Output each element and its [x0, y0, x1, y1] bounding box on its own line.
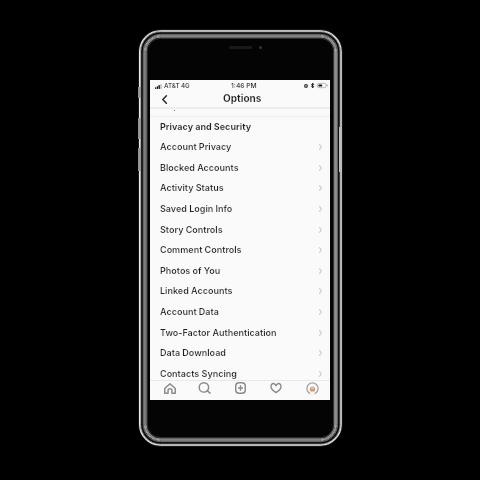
staticText: Photos of You — [160, 265, 221, 276]
staticText: 1:46 PM — [231, 82, 257, 90]
button[interactable]: Blocked Accounts — [150, 157, 330, 178]
button[interactable]: Home — [157, 380, 183, 396]
staticText: Story Controls — [160, 224, 223, 235]
button[interactable]: Data Download — [150, 342, 330, 363]
button[interactable]: New post — [227, 380, 253, 396]
staticText: Account Data — [160, 306, 219, 317]
button[interactable]: Activity Status — [150, 177, 330, 198]
button[interactable]: Activity — [263, 380, 289, 396]
button[interactable]: Linked Accounts — [150, 280, 330, 301]
staticText: Linked Accounts — [160, 285, 233, 296]
staticText: Two-Factor Authentication — [160, 327, 277, 338]
button[interactable]: Search — [192, 380, 218, 396]
staticText: Options — [223, 92, 262, 104]
button[interactable]: Back — [155, 92, 173, 107]
button[interactable]: Privacy and Security — [150, 116, 330, 137]
staticText: Contacts Syncing — [160, 368, 237, 379]
button[interactable]: Story Controls — [150, 219, 330, 240]
button[interactable]: Saved Login Info — [150, 198, 330, 219]
button[interactable]: Two-Factor Authentication — [150, 322, 330, 343]
staticText: Data Download — [160, 347, 226, 358]
staticText: Activity Status — [160, 182, 224, 193]
button[interactable]: Photos of You — [150, 260, 330, 281]
staticText: Saved Login Info — [160, 203, 233, 214]
button[interactable]: Comment Controls — [150, 239, 330, 260]
button[interactable]: Contacts Syncing — [150, 363, 330, 384]
staticText: Account Privacy — [160, 141, 232, 152]
button[interactable]: Profile — [299, 380, 325, 396]
staticText: Privacy and Security — [160, 121, 252, 132]
staticText: AT&T — [164, 82, 180, 90]
button[interactable]: Account Privacy — [150, 136, 330, 157]
staticText: Comment Controls — [160, 244, 242, 255]
button[interactable]: Account Data — [150, 301, 330, 322]
staticText: 4G — [181, 82, 190, 90]
staticText: Blocked Accounts — [160, 162, 239, 173]
